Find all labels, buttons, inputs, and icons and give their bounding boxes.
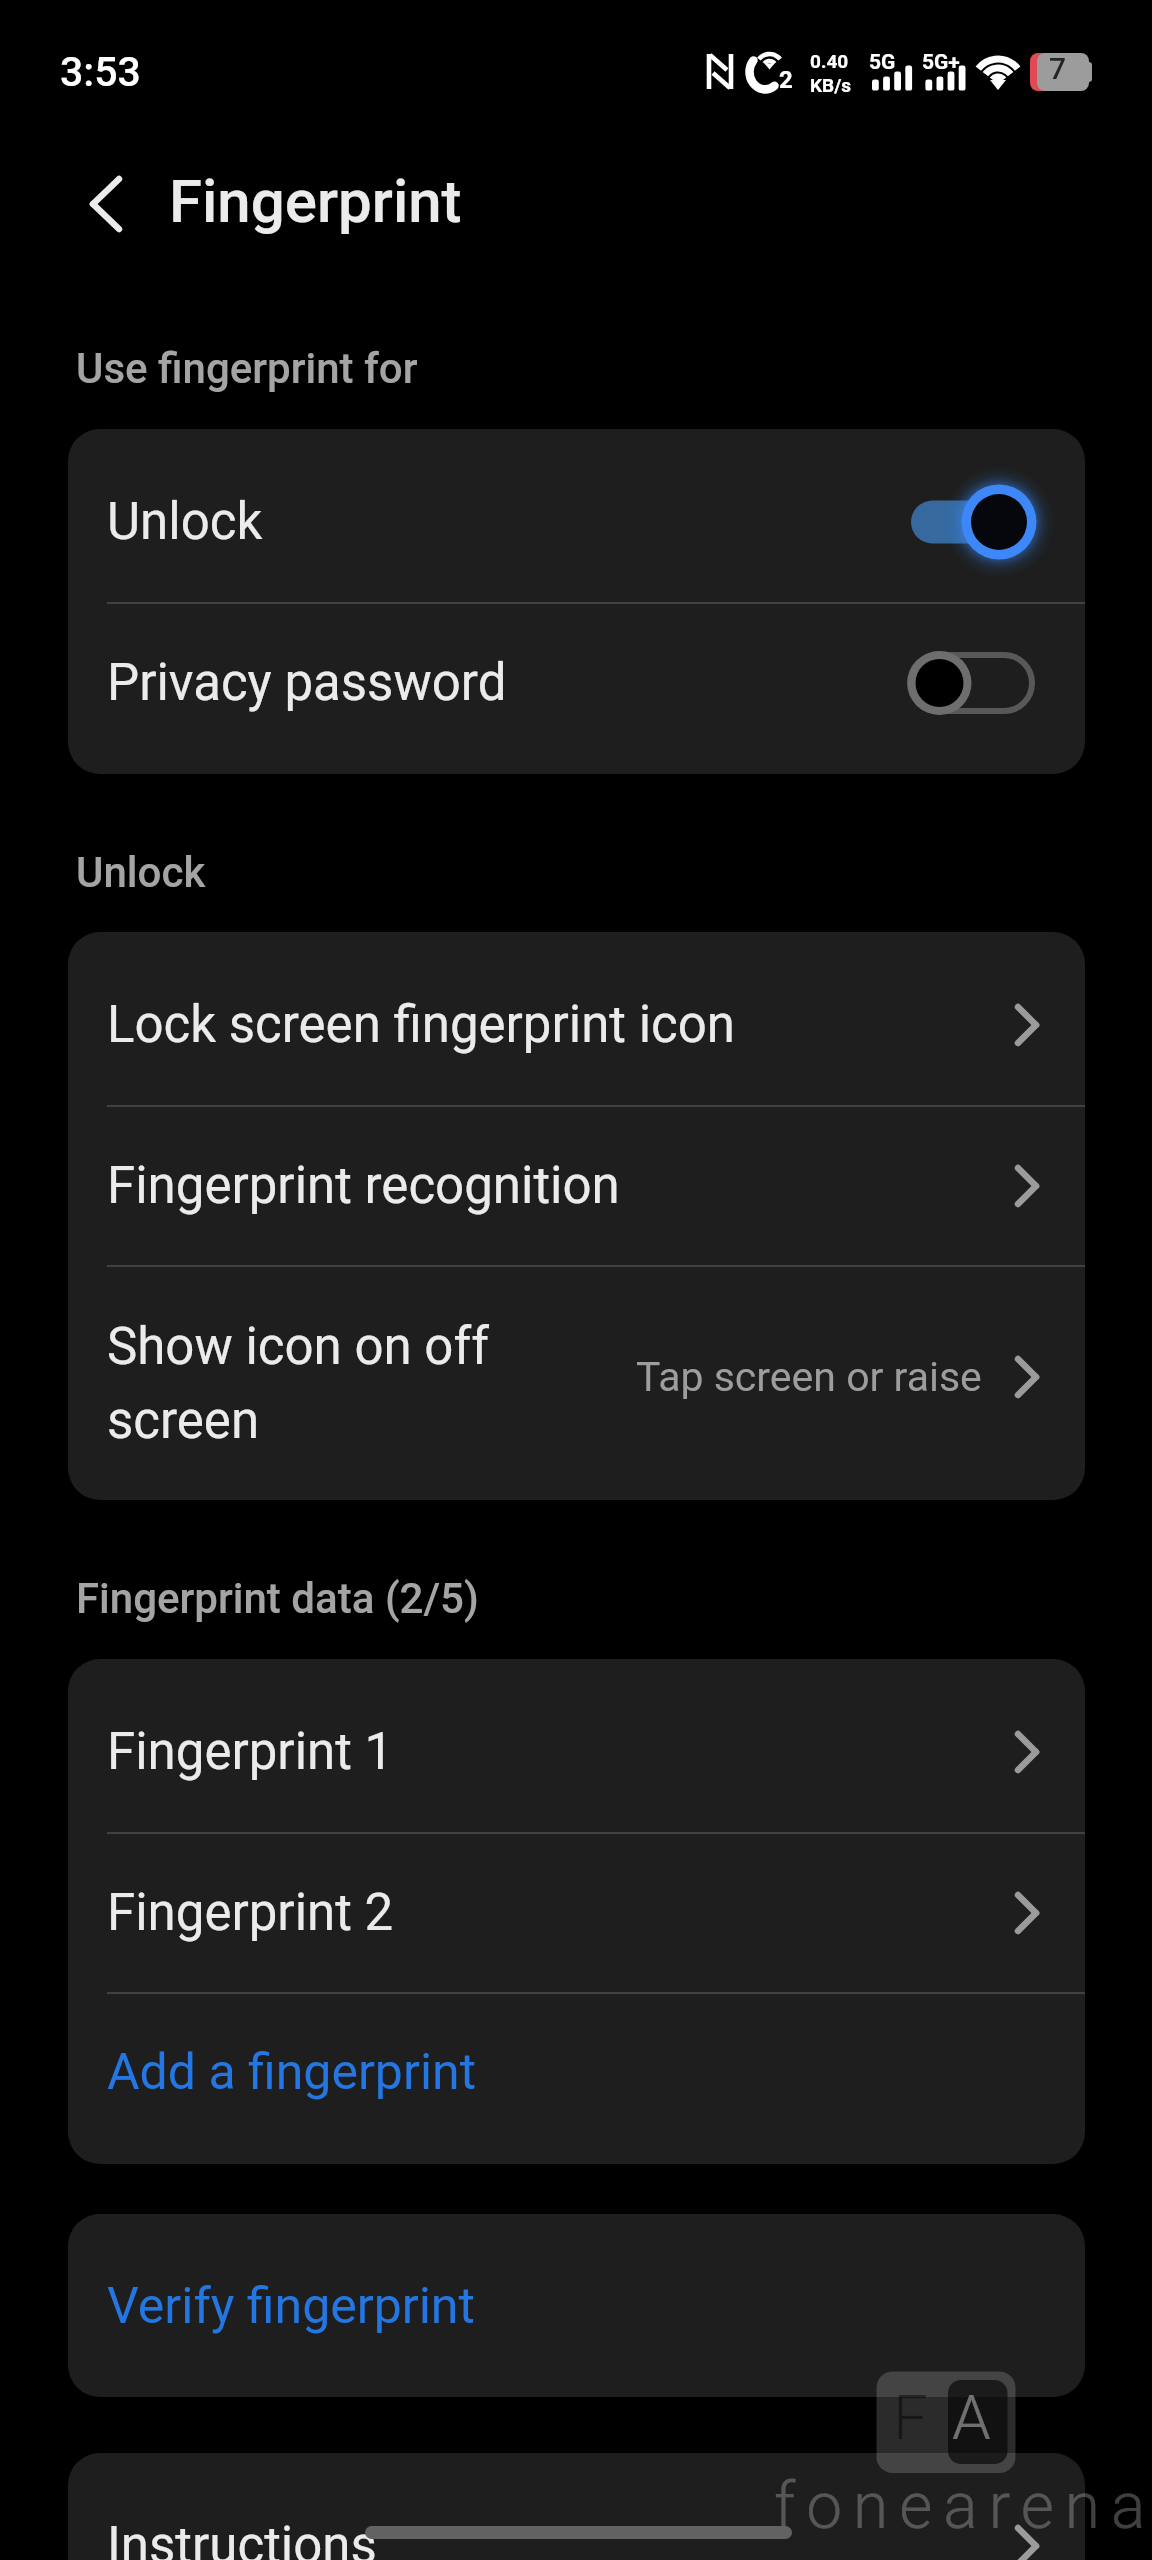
staticText: 0.40 — [810, 50, 849, 72]
button[interactable]: Lock screen fingerprint icon — [68, 944, 1085, 1105]
button[interactable]: Add a fingerprint — [68, 1992, 1085, 2153]
staticText: Privacy password — [107, 653, 507, 713]
staticText: 5G — [869, 50, 896, 75]
staticText: KB/s — [810, 74, 852, 96]
staticText: Show icon on off screen — [107, 1317, 557, 1450]
staticText: Fingerprint — [169, 166, 462, 236]
staticText: F — [893, 2381, 928, 2454]
button[interactable]: Privacy password — [68, 602, 1085, 763]
staticText: Add a fingerprint — [107, 2043, 477, 2102]
button[interactable]: Fingerprint recognition — [68, 1105, 1085, 1266]
staticText: Unlock — [107, 492, 263, 552]
button[interactable]: Unlock switch — [899, 452, 1059, 592]
staticText: 7 — [1049, 51, 1067, 86]
staticText: Lock screen fingerprint icon — [107, 995, 1015, 1055]
staticText: Fingerprint data (2/5) — [76, 1574, 479, 1623]
staticText: 3:53 — [60, 48, 141, 96]
button[interactable]: Show icon on off screen — [68, 1265, 1085, 1488]
button[interactable]: Fingerprint 2 — [68, 1832, 1085, 1993]
staticText: Tap screen or raise — [636, 1353, 982, 1401]
button[interactable]: Unlock — [68, 441, 1085, 602]
staticText: Verify fingerprint — [107, 2277, 475, 2336]
staticText: Fingerprint 2 — [107, 1883, 1015, 1943]
staticText: Instructions — [107, 2516, 1015, 2560]
button[interactable]: Fingerprint 1 — [68, 1671, 1085, 1832]
staticText: Unlock — [76, 848, 206, 897]
staticText: Fingerprint recognition — [107, 1156, 1015, 1216]
button[interactable]: Back — [70, 168, 142, 240]
button[interactable]: Instructions — [68, 2465, 1085, 2560]
staticText: Use fingerprint for — [76, 344, 418, 393]
staticText: A — [952, 2381, 991, 2454]
staticText: 5G+ — [922, 50, 960, 75]
staticText: 2 — [779, 66, 793, 94]
button[interactable]: Privacy password switch — [899, 613, 1059, 753]
staticText: fonearena — [774, 2469, 1152, 2544]
button[interactable]: Verify fingerprint — [68, 2226, 1085, 2387]
staticText: Fingerprint 1 — [107, 1722, 1015, 1782]
